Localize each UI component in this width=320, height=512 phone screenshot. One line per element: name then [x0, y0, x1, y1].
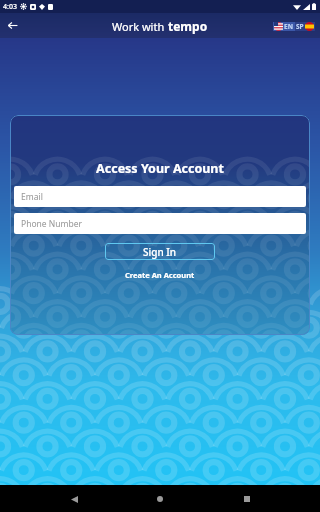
button[interactable]: Phone Number: [14, 213, 306, 234]
button[interactable]: Back: [61, 486, 87, 512]
staticText: 4:03: [3, 2, 17, 12]
button[interactable]: SP: [295, 22, 315, 31]
button[interactable]: Email: [14, 186, 306, 207]
staticText: Work with: [112, 19, 168, 34]
button[interactable]: Home: [147, 486, 173, 512]
staticText: Phone Number: [21, 218, 82, 230]
button[interactable]: EN: [273, 22, 295, 31]
button[interactable]: Recent apps: [234, 486, 260, 512]
staticText: Sign In: [143, 245, 177, 259]
staticText: Create An Account: [125, 270, 195, 280]
staticText: tempo: [168, 18, 208, 34]
button[interactable]: Back: [0, 13, 25, 38]
staticText: Access Your Account: [10, 160, 310, 177]
staticText: EN: [284, 22, 293, 31]
staticText: Email: [21, 191, 43, 203]
button[interactable]: Sign In: [105, 243, 215, 260]
staticText: SP: [296, 22, 304, 31]
button[interactable]: Create An Account: [119, 268, 201, 282]
